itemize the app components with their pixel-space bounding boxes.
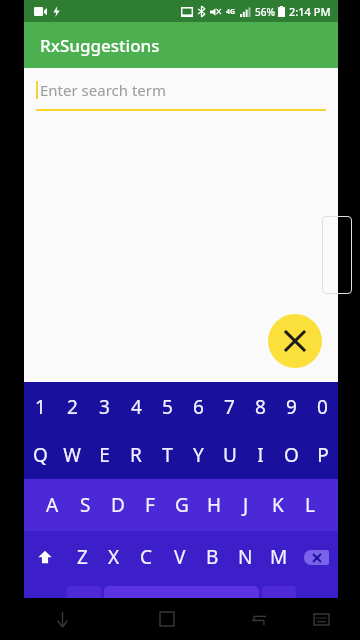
staticText: Z bbox=[77, 544, 88, 570]
button[interactable]: 1 bbox=[24, 382, 56, 431]
staticText: 6 bbox=[193, 394, 204, 420]
button[interactable]: 2 bbox=[56, 382, 88, 431]
staticText: 9 bbox=[286, 394, 297, 420]
button[interactable]: F bbox=[134, 479, 166, 531]
button[interactable]: Shift bbox=[24, 531, 66, 583]
button[interactable]: Backspace bbox=[295, 531, 338, 583]
button[interactable]: Choose input method bbox=[301, 599, 341, 639]
button[interactable]: 4 bbox=[120, 382, 152, 431]
staticText: 3 bbox=[99, 394, 110, 420]
staticText: U bbox=[223, 442, 237, 468]
button[interactable]: 3 bbox=[88, 382, 120, 431]
staticText: D bbox=[111, 492, 125, 518]
staticText: ... bbox=[80, 594, 88, 606]
staticText: E bbox=[99, 442, 110, 468]
button[interactable]: X bbox=[98, 531, 130, 583]
staticText: Q bbox=[33, 442, 48, 468]
button[interactable]: D bbox=[102, 479, 134, 531]
button[interactable]: Enter bbox=[297, 586, 338, 637]
button[interactable]: 7 bbox=[214, 382, 245, 431]
button[interactable]: Home bbox=[147, 599, 187, 639]
staticText: L bbox=[305, 492, 315, 518]
button[interactable]: Space bbox=[104, 586, 259, 637]
staticText: K bbox=[272, 492, 284, 518]
staticText: Y bbox=[193, 442, 204, 468]
button[interactable]: W bbox=[56, 431, 88, 479]
staticText: P bbox=[317, 442, 329, 468]
button[interactable]: Hide keyboard bbox=[42, 599, 82, 639]
button[interactable]: K bbox=[262, 479, 294, 531]
button[interactable]: S bbox=[69, 479, 102, 531]
staticText: 7 bbox=[224, 394, 235, 420]
staticText: W bbox=[63, 442, 81, 468]
staticText: F bbox=[145, 492, 155, 518]
button[interactable]: 6 bbox=[183, 382, 214, 431]
staticText: RxSuggestions bbox=[40, 34, 160, 57]
staticText: 56% bbox=[255, 5, 275, 19]
staticText: 1 bbox=[35, 394, 46, 420]
button[interactable]: ... bbox=[67, 586, 101, 637]
button[interactable]: I bbox=[245, 431, 276, 479]
button[interactable]: 8 bbox=[245, 382, 276, 431]
button[interactable]: 123 bbox=[24, 586, 66, 637]
staticText: S bbox=[80, 492, 91, 518]
staticText: J bbox=[243, 492, 249, 518]
staticText: N bbox=[238, 544, 253, 570]
staticText: B bbox=[206, 544, 219, 570]
button[interactable]: H bbox=[198, 479, 230, 531]
staticText: 2 bbox=[67, 394, 78, 420]
staticText: 8 bbox=[255, 394, 266, 420]
staticText: Enter search term bbox=[40, 80, 167, 100]
button[interactable]: U bbox=[214, 431, 245, 479]
button[interactable]: L bbox=[294, 479, 326, 531]
button[interactable]: E bbox=[88, 431, 120, 479]
staticText: V bbox=[174, 544, 186, 570]
button[interactable]: O bbox=[276, 431, 307, 479]
button[interactable]: Clear bbox=[268, 314, 322, 368]
button[interactable]: B bbox=[196, 531, 229, 583]
button[interactable]: T bbox=[152, 431, 183, 479]
staticText: H bbox=[207, 492, 222, 518]
button[interactable]: M bbox=[262, 531, 295, 583]
staticText: 0 bbox=[317, 394, 328, 420]
button[interactable]: V bbox=[163, 531, 196, 583]
button[interactable]: A bbox=[36, 479, 69, 531]
staticText: 2:14 PM bbox=[289, 4, 331, 19]
staticText: T bbox=[162, 442, 173, 468]
button[interactable]: Enter search term bbox=[36, 80, 326, 111]
staticText: C bbox=[140, 544, 153, 570]
staticText: R bbox=[130, 442, 142, 468]
button[interactable]: Recents bbox=[239, 599, 279, 639]
staticText: G bbox=[175, 492, 189, 518]
button[interactable]: ... bbox=[262, 586, 296, 637]
button[interactable]: 0 bbox=[307, 382, 338, 431]
button[interactable]: N bbox=[229, 531, 262, 583]
button[interactable]: G bbox=[166, 479, 198, 531]
staticText: I bbox=[257, 442, 264, 468]
staticText: M bbox=[270, 544, 288, 570]
button[interactable]: 5 bbox=[152, 382, 183, 431]
staticText: ... bbox=[275, 594, 283, 606]
button[interactable]: J bbox=[230, 479, 262, 531]
staticText: 4 bbox=[131, 394, 142, 420]
button[interactable]: Y bbox=[183, 431, 214, 479]
button[interactable]: P bbox=[307, 431, 338, 479]
staticText: X bbox=[108, 544, 120, 570]
staticText: 4G bbox=[226, 7, 236, 17]
button[interactable]: Z bbox=[66, 531, 98, 583]
staticText: 5 bbox=[162, 394, 173, 420]
button[interactable]: R bbox=[120, 431, 152, 479]
button[interactable]: 9 bbox=[276, 382, 307, 431]
button[interactable]: Q bbox=[24, 431, 56, 479]
button[interactable]: C bbox=[130, 531, 163, 583]
staticText: A bbox=[46, 492, 59, 518]
staticText: O bbox=[284, 442, 299, 468]
